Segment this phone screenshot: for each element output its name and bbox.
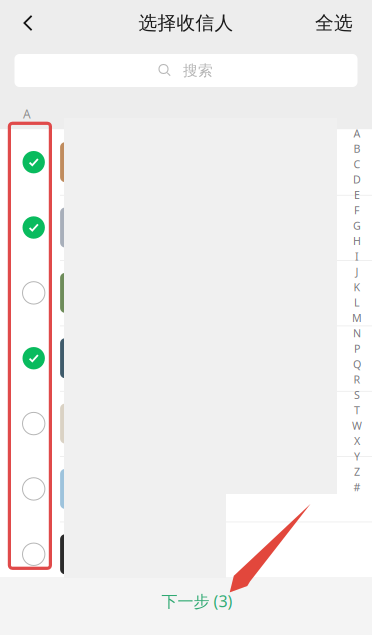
staticText: B (353, 142, 360, 156)
button[interactable]: # (347, 479, 367, 495)
staticText: Y (354, 449, 360, 463)
button[interactable]: W (347, 418, 367, 433)
button[interactable]: A (347, 126, 367, 141)
button[interactable]: T (347, 402, 367, 418)
staticText: K (353, 280, 360, 294)
button[interactable]: G (347, 218, 367, 233)
button[interactable]: K (347, 279, 367, 295)
staticText: E (354, 188, 360, 202)
staticText: 选择收信人 (138, 11, 233, 34)
staticText: J (355, 265, 358, 279)
button[interactable]: 白云 (0, 325, 372, 391)
button[interactable]: Y (347, 449, 367, 464)
button[interactable]: F (347, 202, 367, 218)
button[interactable]: Z (347, 464, 367, 479)
staticText: N (353, 326, 361, 340)
staticText: M (352, 311, 362, 325)
staticText: S (354, 388, 360, 402)
button[interactable]: 返回 (0, 0, 56, 46)
button[interactable]: 阿文 (0, 260, 372, 325)
staticText: H (353, 234, 361, 248)
staticText: Z (354, 465, 360, 479)
button[interactable]: L (347, 295, 367, 310)
button[interactable]: N (347, 325, 367, 341)
staticText: P (354, 341, 360, 356)
staticText: X (354, 434, 360, 448)
staticText: D (353, 172, 361, 186)
button[interactable]: D (347, 172, 367, 187)
staticText: A (23, 106, 31, 122)
button[interactable]: 春风 (0, 522, 372, 587)
staticText: # (353, 480, 360, 494)
button[interactable]: 冰冰 (0, 391, 372, 456)
button[interactable]: X (347, 433, 367, 449)
staticText: 全选 (315, 11, 353, 34)
button[interactable]: J (347, 264, 367, 279)
button[interactable]: P (347, 341, 367, 356)
button[interactable]: I (347, 249, 367, 264)
staticText: 搜索 (183, 61, 213, 79)
button[interactable]: 下一步 (3) (0, 577, 372, 635)
staticText: A (353, 126, 360, 140)
staticText: C (353, 157, 360, 171)
staticText: R (353, 372, 360, 386)
staticText: G (353, 218, 361, 233)
button[interactable]: Q (347, 356, 367, 372)
staticText: L (354, 295, 360, 310)
button[interactable]: S (347, 387, 367, 402)
button[interactable]: B (347, 141, 367, 156)
button[interactable]: 搜索 (14, 54, 357, 87)
button[interactable]: M (347, 310, 367, 326)
staticText: I (355, 249, 359, 263)
button[interactable]: C (347, 156, 367, 172)
button[interactable]: 阿里 (0, 129, 372, 195)
button[interactable]: R (347, 372, 367, 387)
button[interactable]: 陈晨 (0, 456, 372, 521)
staticText: T (354, 403, 360, 417)
button[interactable]: 全选 (306, 0, 372, 46)
button[interactable]: H (347, 233, 367, 249)
button[interactable]: E (347, 187, 367, 202)
staticText: Q (353, 357, 361, 371)
staticText: F (354, 203, 360, 217)
staticText: 下一步 (3) (161, 590, 232, 612)
staticText: W (352, 418, 362, 433)
button[interactable]: 安安 (0, 195, 372, 260)
